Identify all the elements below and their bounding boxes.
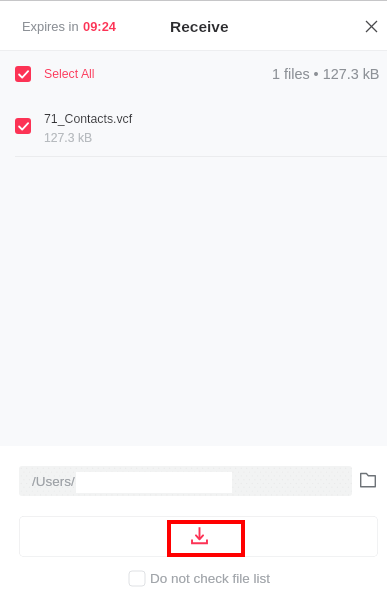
staticText: Receive — [170, 18, 229, 35]
staticText: Expires in — [22, 19, 83, 33]
button[interactable]: 71_Contacts.vcf — [0, 96, 387, 156]
button[interactable]: Do not check file list — [129, 571, 271, 586]
staticText: /Users/ — [32, 474, 75, 489]
staticText: 71_Contacts.vcf — [44, 112, 133, 126]
staticText: Do not check file list — [150, 571, 271, 586]
button[interactable]: /Users/ — [19, 466, 352, 496]
staticText: 127.3 kB — [44, 131, 93, 145]
button[interactable]: Download — [19, 516, 378, 557]
button[interactable]: Choose folder — [355, 466, 381, 492]
staticText: Select All — [44, 67, 95, 81]
button[interactable]: Close — [355, 10, 387, 42]
staticText: 1 files • 127.3 kB — [272, 66, 380, 82]
button[interactable]: Select All — [0, 51, 387, 96]
staticText: 09:24 — [83, 19, 116, 33]
